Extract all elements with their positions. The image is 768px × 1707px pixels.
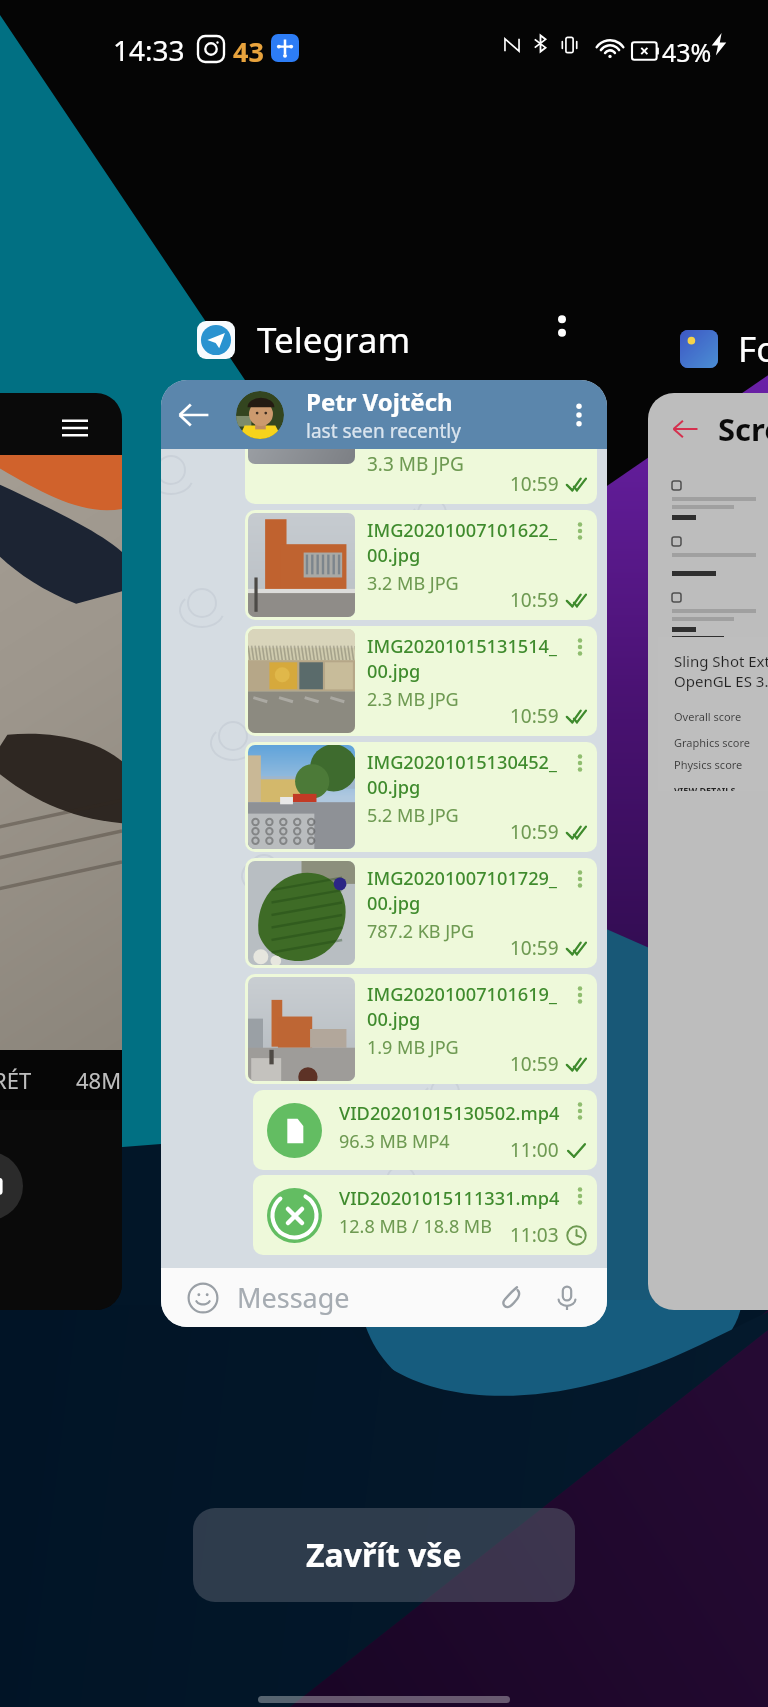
button[interactable]: IMG20201007101619_	[245, 974, 597, 1084]
staticText: Overall score	[674, 709, 742, 724]
button[interactable]: More	[551, 380, 607, 449]
staticText: Graphics score	[674, 735, 751, 750]
button[interactable]: Telegram recent task	[161, 380, 607, 1327]
button[interactable]: Message options	[567, 518, 593, 544]
button[interactable]: Zavřít vše	[193, 1508, 575, 1602]
button[interactable]: VID20201015111331.mp4	[253, 1175, 597, 1255]
staticText: 787.2 KB JPG	[367, 919, 475, 944]
staticText: Message	[237, 1279, 350, 1316]
button[interactable]: Message options	[567, 750, 593, 776]
staticText: 00.jpg	[367, 1007, 421, 1032]
staticText: 3.2 MB JPG	[367, 571, 459, 596]
staticText: 10:59	[510, 1051, 559, 1077]
button[interactable]: Message options	[567, 982, 593, 1008]
staticText: IMG20201007101619_	[367, 982, 557, 1007]
button[interactable]: Message options	[567, 1098, 593, 1124]
staticText: OpenGL ES 3.1	[674, 671, 768, 691]
staticText: 10:59	[510, 471, 559, 497]
staticText: 10:59	[510, 819, 559, 845]
staticText: IMG20201007101622_	[367, 518, 557, 543]
staticText: 5.2 MB JPG	[367, 803, 459, 828]
staticText: Petr Vojtěch	[306, 385, 453, 418]
staticText: Fo	[738, 325, 768, 373]
staticText: 00.jpg	[367, 543, 421, 568]
staticText: VID20201015111331.mp4	[339, 1186, 560, 1211]
button[interactable]: Camera recent task	[0, 393, 122, 1310]
staticText: IMG20201007101729_	[367, 866, 557, 891]
button[interactable]: Back	[161, 380, 227, 449]
staticText: 3.3 MB JPG	[367, 451, 464, 477]
staticText: Scree	[718, 408, 768, 450]
button[interactable]: 3.3 MB JPG	[245, 449, 597, 504]
button[interactable]: IMG20201007101729_	[245, 858, 597, 968]
staticText: VIEW DETAILS	[674, 784, 736, 791]
button[interactable]: Message options	[567, 1183, 593, 1209]
button[interactable]: Attach	[489, 1276, 533, 1320]
staticText: 00.jpg	[367, 659, 421, 684]
staticText: Physics score	[674, 757, 743, 772]
staticText: 11:03	[510, 1222, 559, 1248]
staticText: 1.9 MB JPG	[367, 1035, 459, 1060]
staticText: Telegram	[257, 316, 411, 364]
staticText: ORTRÉT	[0, 1065, 32, 1095]
button[interactable]: More options	[536, 300, 588, 352]
button[interactable]: Screenshot recent task	[648, 393, 768, 1310]
button[interactable]: Emoji	[183, 1278, 223, 1318]
staticText: 14:33	[113, 31, 185, 69]
button[interactable]: Message options	[567, 866, 593, 892]
staticText: 10:59	[510, 935, 559, 961]
staticText: VID20201015130502.mp4	[339, 1101, 560, 1126]
staticText: 00.jpg	[367, 775, 421, 800]
staticText: 43%	[662, 35, 712, 69]
staticText: 00.jpg	[367, 891, 421, 916]
staticText: 2.3 MB JPG	[367, 687, 459, 712]
staticText: 48M	[76, 1065, 122, 1095]
staticText: IMG20201015131514_	[367, 634, 557, 659]
button[interactable]: IMG20201015131514_	[245, 626, 597, 736]
staticText: 10:59	[510, 703, 559, 729]
staticText: 11:00	[510, 1137, 559, 1163]
staticText: Zavřít vše	[306, 1533, 462, 1577]
button[interactable]: Voice message	[545, 1276, 589, 1320]
staticText: last seen recently	[306, 418, 461, 444]
staticText: 12.8 MB / 18.8 MB	[339, 1214, 492, 1239]
button[interactable]: IMG20201015130452_	[245, 742, 597, 852]
button[interactable]: VID20201015130502.mp4	[253, 1090, 597, 1170]
staticText: Sling Shot Extreme -	[674, 651, 768, 671]
button[interactable]: IMG20201007101622_	[245, 510, 597, 620]
staticText: 10:59	[510, 587, 559, 613]
staticText: 96.3 MB MP4	[339, 1129, 450, 1154]
staticText: 43	[233, 33, 264, 70]
staticText: IMG20201015130452_	[367, 750, 557, 775]
button[interactable]: Message options	[567, 634, 593, 660]
